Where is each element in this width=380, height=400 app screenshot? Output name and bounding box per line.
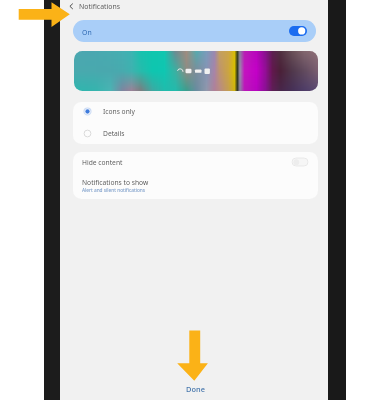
- button[interactable]: On: [73, 20, 316, 42]
- staticText: On: [82, 28, 92, 37]
- staticText: Notifications: [79, 2, 120, 11]
- button[interactable]: Details: [73, 124, 318, 144]
- staticText: Notifications to show: [82, 178, 149, 187]
- button[interactable]: Hide content: [73, 152, 318, 173]
- staticText: Hide content: [82, 158, 123, 167]
- button[interactable]: Icons only: [73, 102, 318, 123]
- staticText: Alert and silent notifications: [82, 187, 146, 194]
- staticText: Icons only: [103, 107, 135, 116]
- button[interactable]: Back: [64, 0, 80, 14]
- button[interactable]: Done: [165, 382, 225, 395]
- button[interactable]: Notifications to show: [73, 176, 318, 199]
- button[interactable]: Notification preview: [74, 51, 318, 91]
- staticText: Done: [186, 384, 205, 394]
- staticText: Details: [103, 129, 125, 138]
